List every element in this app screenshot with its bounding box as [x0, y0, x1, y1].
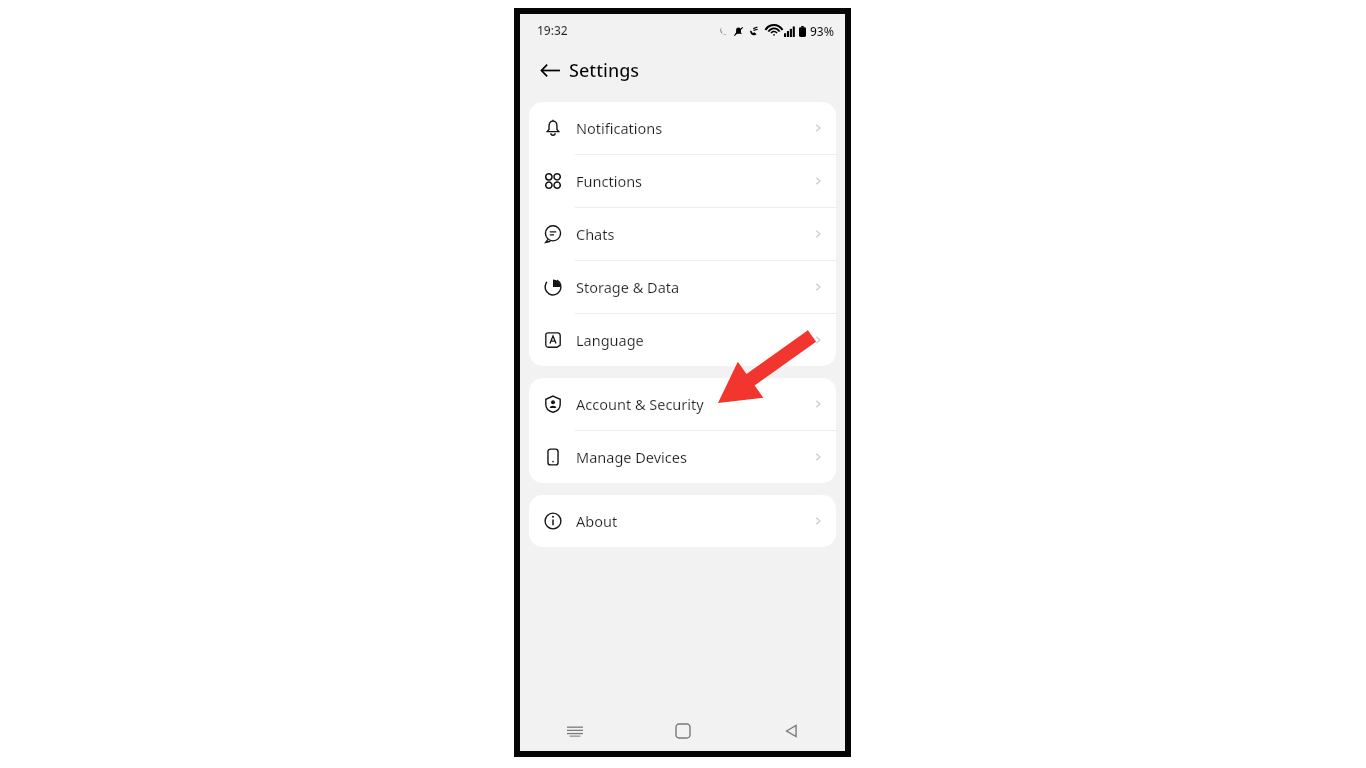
staticText: 93%: [810, 23, 834, 39]
staticText: Language: [576, 330, 811, 350]
button[interactable]: Manage Devices: [529, 431, 836, 483]
staticText: Storage & Data: [576, 277, 811, 297]
button[interactable]: Home: [629, 711, 737, 751]
staticText: Settings: [569, 58, 640, 83]
button[interactable]: About: [529, 495, 836, 547]
staticText: Notifications: [576, 118, 811, 138]
button[interactable]: Chats: [529, 208, 836, 260]
staticText: Manage Devices: [576, 447, 811, 467]
staticText: Chats: [576, 224, 811, 244]
button[interactable]: Language: [529, 314, 836, 366]
staticText: Functions: [576, 171, 811, 191]
button[interactable]: Back: [737, 711, 845, 751]
staticText: 19:32: [537, 22, 568, 38]
staticText: Account & Security: [576, 394, 811, 414]
button[interactable]: Recent apps: [520, 711, 629, 751]
button[interactable]: Account & Security: [529, 378, 836, 430]
button[interactable]: Back: [530, 50, 570, 90]
other: Annotation arrow: [520, 14, 845, 751]
button[interactable]: Storage & Data: [529, 261, 836, 313]
button[interactable]: Notifications: [529, 102, 836, 154]
staticText: About: [576, 511, 811, 531]
button[interactable]: Functions: [529, 155, 836, 207]
